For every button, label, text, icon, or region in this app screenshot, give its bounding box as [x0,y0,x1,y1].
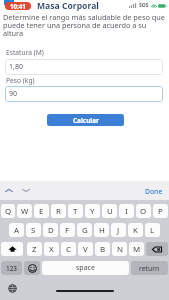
button[interactable]: I [119,204,134,218]
button[interactable]: Shift [1,242,23,256]
button[interactable]: F [60,223,75,237]
staticText: T [73,206,78,217]
button[interactable]: 123 [1,261,22,275]
button[interactable]: V [78,242,93,256]
staticText: R [56,206,61,217]
button[interactable]: J [111,223,126,237]
staticText: J [117,225,120,236]
staticText: 123 [6,264,17,273]
staticText: Peso (kg) [6,76,35,85]
staticText: M [133,244,141,255]
button[interactable]: M [129,242,144,256]
staticText: Estatura (M) [6,48,44,57]
button[interactable]: C [61,242,76,256]
other: Next field [22,188,30,193]
staticText: N [117,244,123,255]
staticText: C [66,244,71,255]
button[interactable]: Done [145,187,163,196]
staticText: Q [5,206,12,217]
button[interactable]: U [102,204,117,218]
staticText: L [150,225,155,236]
staticText: H [99,225,105,236]
staticText: 90 [9,89,18,99]
staticText: U [107,206,113,217]
button[interactable]: Emoji [24,261,40,275]
staticText: W [21,206,29,217]
staticText: Masa Corporal [37,0,99,11]
staticText: A [14,225,20,236]
button[interactable]: Z [27,242,42,256]
staticText: Determine el rango más saludable de peso… [3,12,169,39]
staticText: Calcular [73,116,99,125]
button[interactable]: W [17,204,32,218]
staticText: Z [32,244,37,255]
button[interactable]: 1,80 [5,59,163,75]
button[interactable]: O [136,204,151,218]
staticText: space [76,263,95,273]
staticText: K [133,225,138,236]
button[interactable]: Calcular [47,114,124,126]
staticText: D [48,225,54,236]
staticText: E [39,206,44,217]
button[interactable]: X [44,242,59,256]
button[interactable]: D [43,223,58,237]
button[interactable]: return [131,261,168,275]
other: Previous field [5,188,13,193]
button[interactable]: space [42,261,129,275]
staticText: B [100,244,106,255]
staticText: Done [145,187,163,196]
button[interactable]: Y [85,204,100,218]
button[interactable]: P [153,204,168,218]
staticText: SOS [139,2,149,9]
staticText: F [65,225,70,236]
button[interactable]: Backspace [146,242,168,256]
button[interactable]: Q [1,204,15,218]
button[interactable]: 90 [5,86,163,102]
button[interactable]: Change keyboard [8,284,17,293]
staticText: return [139,264,160,273]
staticText: I [125,206,128,217]
button[interactable]: R [51,204,66,218]
button[interactable]: K [128,223,143,237]
button[interactable]: A [9,223,24,237]
button[interactable]: H [94,223,109,237]
staticText: Y [90,206,95,217]
staticText: V [83,244,88,255]
staticText: S [31,225,36,236]
button[interactable]: N [112,242,127,256]
button[interactable]: E [34,204,49,218]
staticText: P [158,206,163,217]
button[interactable]: G [77,223,92,237]
staticText: G [82,225,88,236]
staticText: 1,80 [9,62,23,72]
staticText: X [49,244,54,255]
button[interactable]: L [145,223,160,237]
button[interactable]: B [95,242,110,256]
staticText: 10:41 [10,2,26,10]
button[interactable]: S [26,223,41,237]
staticText: O [140,206,147,217]
button[interactable]: T [68,204,83,218]
